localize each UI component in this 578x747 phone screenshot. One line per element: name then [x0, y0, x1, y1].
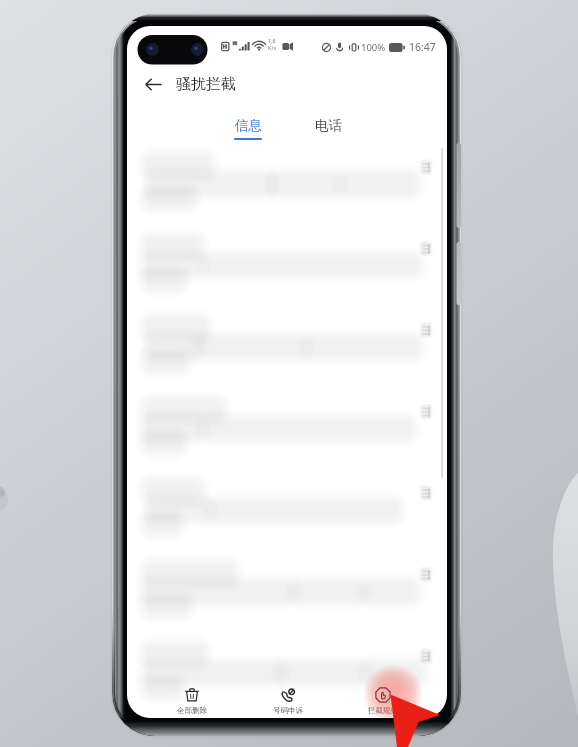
staticText: 100% — [361, 41, 386, 54]
staticText: 1.6 — [268, 37, 276, 44]
staticText: 骚扰拦截 — [176, 75, 236, 94]
button[interactable]: 信息 — [224, 114, 272, 144]
staticText: 号码申诉 — [273, 706, 303, 715]
button[interactable] — [127, 146, 447, 686]
staticText: 16:47 — [409, 40, 436, 54]
staticText: 信息 — [235, 117, 262, 134]
staticText: K/s — [268, 44, 277, 51]
button[interactable]: 全部删除 — [166, 681, 218, 718]
button[interactable]: 号码申诉 — [262, 681, 314, 718]
staticText: 电话 — [315, 117, 342, 134]
button[interactable]: 电话 — [304, 114, 352, 144]
staticText: 拦截规则 — [368, 706, 398, 715]
staticText: 全部删除 — [177, 706, 207, 715]
button[interactable]: Back — [137, 68, 169, 100]
button[interactable]: 拦截规则 — [357, 681, 409, 718]
